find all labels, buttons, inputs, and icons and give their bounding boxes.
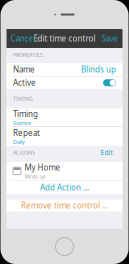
staticText: Edit time control [33,33,95,44]
button[interactable]: Remove time control ... [6,199,122,211]
staticText: ACTIONS [13,149,35,156]
staticText: Sunrise [13,119,31,126]
button[interactable]: Timing [6,108,122,126]
staticText: Active [13,77,36,88]
staticText: TIMING [13,95,33,102]
button[interactable]: Name [6,63,122,76]
button[interactable]: My Home [6,162,122,180]
button[interactable]: Save [98,29,122,48]
staticText: Edit [100,148,112,157]
button[interactable]: Add Action ... [6,180,122,194]
staticText: Add Action ... [40,182,89,193]
staticText: Remove time control ... [21,200,108,211]
button[interactable]: Repeat [6,127,122,146]
staticText: My Home [24,162,60,173]
button[interactable]: Edit [100,148,116,157]
staticText: Save [102,33,119,44]
staticText: Daily [13,138,25,145]
button[interactable]: Active [103,79,116,86]
staticText: Blinds up [81,64,116,75]
staticText: Timing [13,109,38,119]
staticText: Blinds up [24,173,45,180]
staticText: Repeat [13,128,40,138]
staticText: Name [13,64,35,75]
staticText: PROPERTIES [13,51,43,58]
button[interactable]: Cancel [6,29,39,48]
staticText: Cancel [10,33,35,44]
